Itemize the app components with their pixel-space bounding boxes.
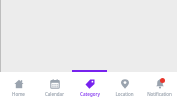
- staticText: Location: [115, 91, 134, 97]
- button[interactable]: Category: [72, 75, 107, 97]
- staticText: Home: [12, 91, 25, 97]
- staticText: Notification: [147, 91, 172, 97]
- staticText: Calendar: [45, 91, 64, 97]
- button[interactable]: Location: [107, 75, 142, 97]
- button[interactable]: Calendar: [36, 75, 72, 97]
- staticText: Category: [80, 91, 100, 97]
- button[interactable]: Notification: [142, 75, 177, 97]
- button[interactable]: Home: [0, 75, 36, 97]
